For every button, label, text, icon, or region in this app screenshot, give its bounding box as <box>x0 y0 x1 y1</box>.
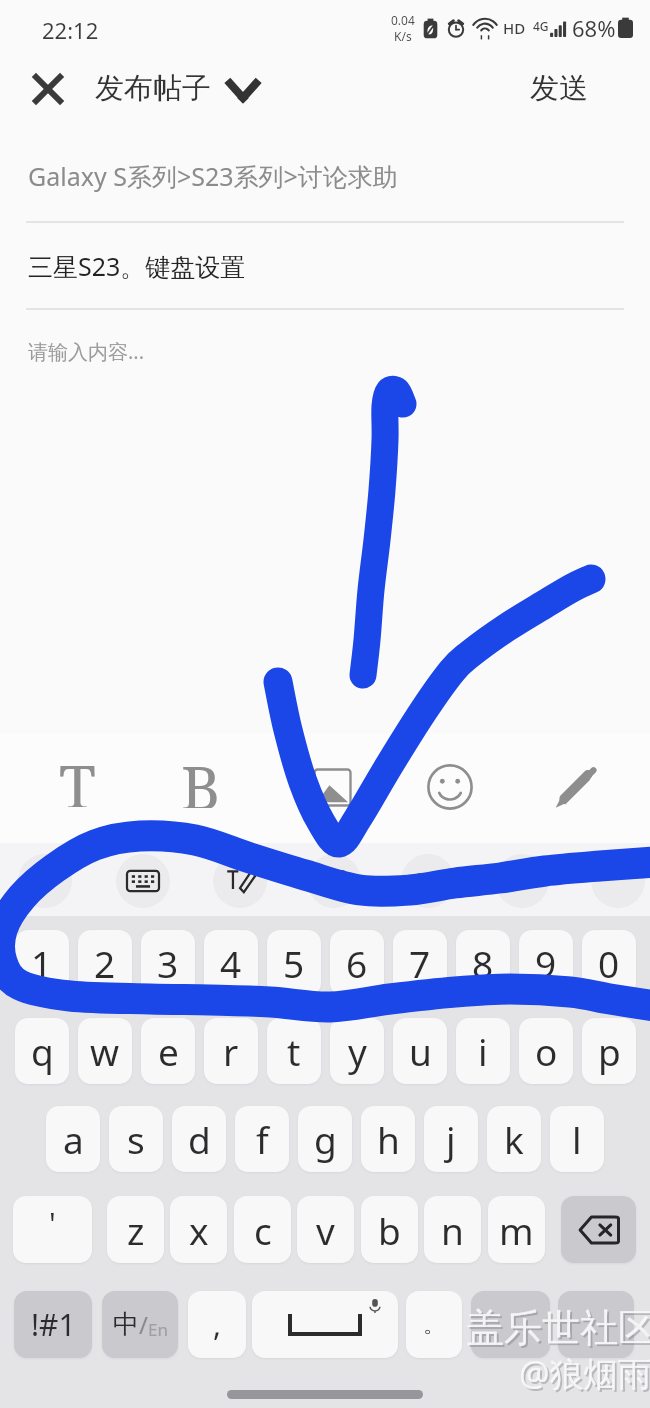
staticText: 68% <box>572 13 616 43</box>
staticText: 6 <box>346 938 368 988</box>
staticText: 4G <box>533 18 549 34</box>
staticText: ' <box>49 1203 56 1244</box>
button[interactable]: e <box>141 1018 195 1084</box>
button[interactable]: Themes <box>495 854 549 908</box>
staticText: 0.04 <box>391 12 415 28</box>
button[interactable]: c <box>234 1196 291 1263</box>
button[interactable]: Keyboard layout <box>116 854 170 908</box>
button[interactable]: Space <box>252 1291 398 1358</box>
staticText: u <box>409 1026 432 1076</box>
button[interactable]: Emoji <box>419 756 481 818</box>
button[interactable]: Insert image <box>301 756 363 818</box>
staticText: 4 <box>220 938 242 988</box>
staticText: o <box>535 1026 558 1076</box>
staticText: b <box>378 1205 401 1255</box>
button[interactable]: 中 <box>102 1291 178 1358</box>
staticText: j <box>446 1114 456 1164</box>
staticText: k <box>504 1114 524 1164</box>
staticText: c <box>254 1205 272 1255</box>
button[interactable]: 3 <box>141 930 195 996</box>
staticText: w <box>90 1026 120 1076</box>
button[interactable]: Bold <box>170 756 232 818</box>
staticText: 7 <box>409 938 431 988</box>
button[interactable]: n <box>424 1196 481 1263</box>
staticText: 中 <box>113 1308 139 1341</box>
button[interactable]: 9 <box>519 930 573 996</box>
staticText: 发送 <box>530 70 588 107</box>
button[interactable]: ' <box>13 1196 92 1263</box>
button[interactable]: j <box>424 1106 478 1172</box>
staticText: 盖乐世社区 <box>466 1304 650 1352</box>
staticText: / <box>139 1308 148 1341</box>
staticText: HD <box>503 18 526 38</box>
button[interactable]: g <box>298 1106 352 1172</box>
button[interactable]: Enter <box>558 1291 634 1358</box>
button[interactable]: 发送 <box>516 60 602 117</box>
button[interactable]: 5 <box>267 930 321 996</box>
button[interactable]: x <box>170 1196 227 1263</box>
staticText: m <box>499 1205 534 1255</box>
button[interactable]: Close <box>22 63 74 115</box>
staticText: s <box>127 1114 145 1164</box>
staticText: n <box>441 1205 464 1255</box>
button[interactable]: f <box>235 1106 289 1172</box>
staticText: q <box>31 1026 54 1076</box>
staticText: h <box>377 1114 400 1164</box>
button[interactable]: 4 <box>204 930 258 996</box>
button[interactable]: Handwriting <box>213 854 267 908</box>
staticText: i <box>478 1026 488 1076</box>
button[interactable]: a <box>46 1106 100 1172</box>
staticText: 9 <box>535 938 557 988</box>
button[interactable]: p <box>582 1018 636 1084</box>
staticText: 8 <box>472 938 494 988</box>
button[interactable]: , <box>188 1291 246 1358</box>
staticText: 。 <box>423 1311 445 1339</box>
button[interactable]: Text editing <box>401 854 455 908</box>
staticText: x <box>189 1205 209 1255</box>
staticText: y <box>348 1026 367 1076</box>
button[interactable]: 发布帖子 <box>90 62 264 115</box>
button[interactable]: Emoji keyboard <box>471 1291 550 1358</box>
button[interactable]: z <box>107 1196 164 1263</box>
button[interactable]: More <box>591 854 645 908</box>
button[interactable]: 0 <box>582 930 636 996</box>
button[interactable]: t <box>267 1018 321 1084</box>
staticText: e <box>158 1026 179 1076</box>
button[interactable]: b <box>361 1196 418 1263</box>
button[interactable]: Draw <box>544 756 606 818</box>
button[interactable]: 7 <box>393 930 447 996</box>
button[interactable]: 2 <box>78 930 132 996</box>
staticText: 三星S23。键盘设置 <box>28 249 246 283</box>
button[interactable]: s <box>109 1106 163 1172</box>
button[interactable]: l <box>550 1106 604 1172</box>
staticText: 1 <box>31 938 53 988</box>
button[interactable]: u <box>393 1018 447 1084</box>
staticText: K/s <box>394 28 412 44</box>
button[interactable]: o <box>519 1018 573 1084</box>
button[interactable]: Galaxy S系列>S23系列>讨论求助 <box>0 131 650 221</box>
button[interactable]: i <box>456 1018 510 1084</box>
staticText: r <box>223 1026 239 1076</box>
button[interactable]: r <box>204 1018 258 1084</box>
button[interactable]: h <box>361 1106 415 1172</box>
button[interactable]: 1 <box>15 930 69 996</box>
button[interactable]: y <box>330 1018 384 1084</box>
button[interactable]: 8 <box>456 930 510 996</box>
button[interactable]: k <box>487 1106 541 1172</box>
button[interactable]: v <box>297 1196 354 1263</box>
staticText: 请输入内容... <box>28 338 145 365</box>
button[interactable]: d <box>172 1106 226 1172</box>
button[interactable]: Backspace <box>561 1196 636 1263</box>
staticText: T <box>59 745 96 807</box>
button[interactable]: Text style <box>46 756 108 818</box>
staticText: @狼烟雨 <box>521 1352 650 1398</box>
button[interactable]: q <box>15 1018 69 1084</box>
button[interactable]: m <box>488 1196 545 1263</box>
button[interactable]: 。 <box>406 1291 462 1358</box>
button[interactable]: w <box>78 1018 132 1084</box>
button[interactable]: Settings <box>18 854 72 908</box>
button[interactable]: !#1 <box>14 1291 92 1358</box>
button[interactable]: Clipboard <box>307 854 361 908</box>
staticText: v <box>316 1205 335 1255</box>
button[interactable]: 6 <box>330 930 384 996</box>
